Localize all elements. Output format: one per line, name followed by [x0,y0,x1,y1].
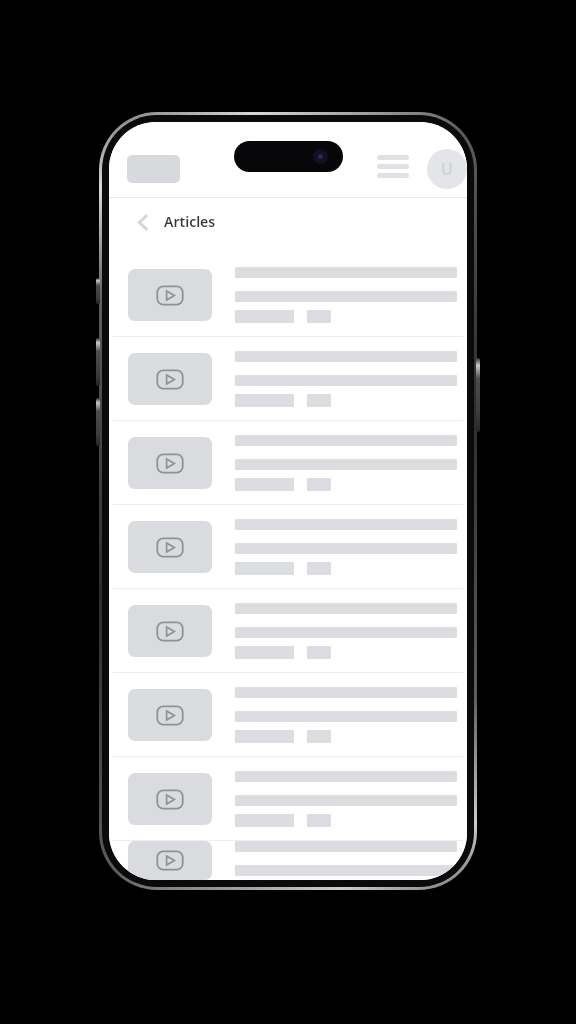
button[interactable]: Account [427,149,467,189]
button[interactable] [109,253,467,336]
button[interactable] [109,841,467,880]
staticText: U [441,158,453,180]
button[interactable] [109,505,467,588]
button[interactable] [109,673,467,756]
button[interactable]: Back [130,209,156,235]
button[interactable] [109,757,467,840]
button[interactable]: Menu [376,152,410,180]
button[interactable]: Logo [127,155,180,183]
staticText: Articles [164,212,216,231]
button[interactable] [109,589,467,672]
button[interactable] [109,337,467,420]
button[interactable] [109,421,467,504]
